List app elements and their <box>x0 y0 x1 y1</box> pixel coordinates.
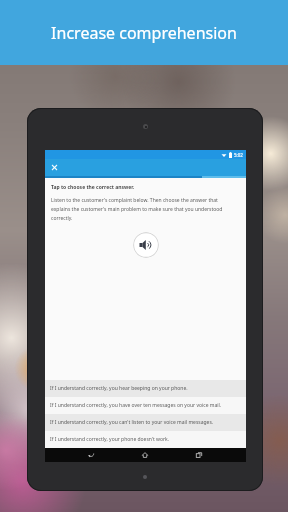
button[interactable]: Play audio <box>133 232 159 258</box>
button[interactable]: Home <box>138 448 152 462</box>
staticText: If I understand correctly, you hear beep… <box>50 385 188 392</box>
staticText: Increase comprehension <box>51 22 237 44</box>
staticText: If I understand correctly, you have over… <box>50 402 222 409</box>
button[interactable]: Back <box>84 448 98 462</box>
button[interactable]: If I understand correctly, you hear beep… <box>45 380 246 397</box>
button[interactable]: Close <box>49 162 60 173</box>
button[interactable]: If I understand correctly, your phone do… <box>45 431 246 448</box>
staticText: Listen to the customer's complaint below… <box>51 197 238 222</box>
button[interactable]: Recent apps <box>192 448 206 462</box>
button[interactable]: If I understand correctly, you have over… <box>45 397 246 414</box>
staticText: If I understand correctly, you can't lis… <box>50 419 214 426</box>
staticText: Tap to choose the correct answer. <box>51 184 135 191</box>
staticText: 5:02 <box>234 152 243 158</box>
button[interactable]: If I understand correctly, you can't lis… <box>45 414 246 431</box>
staticText: If I understand correctly, your phone do… <box>50 436 170 443</box>
